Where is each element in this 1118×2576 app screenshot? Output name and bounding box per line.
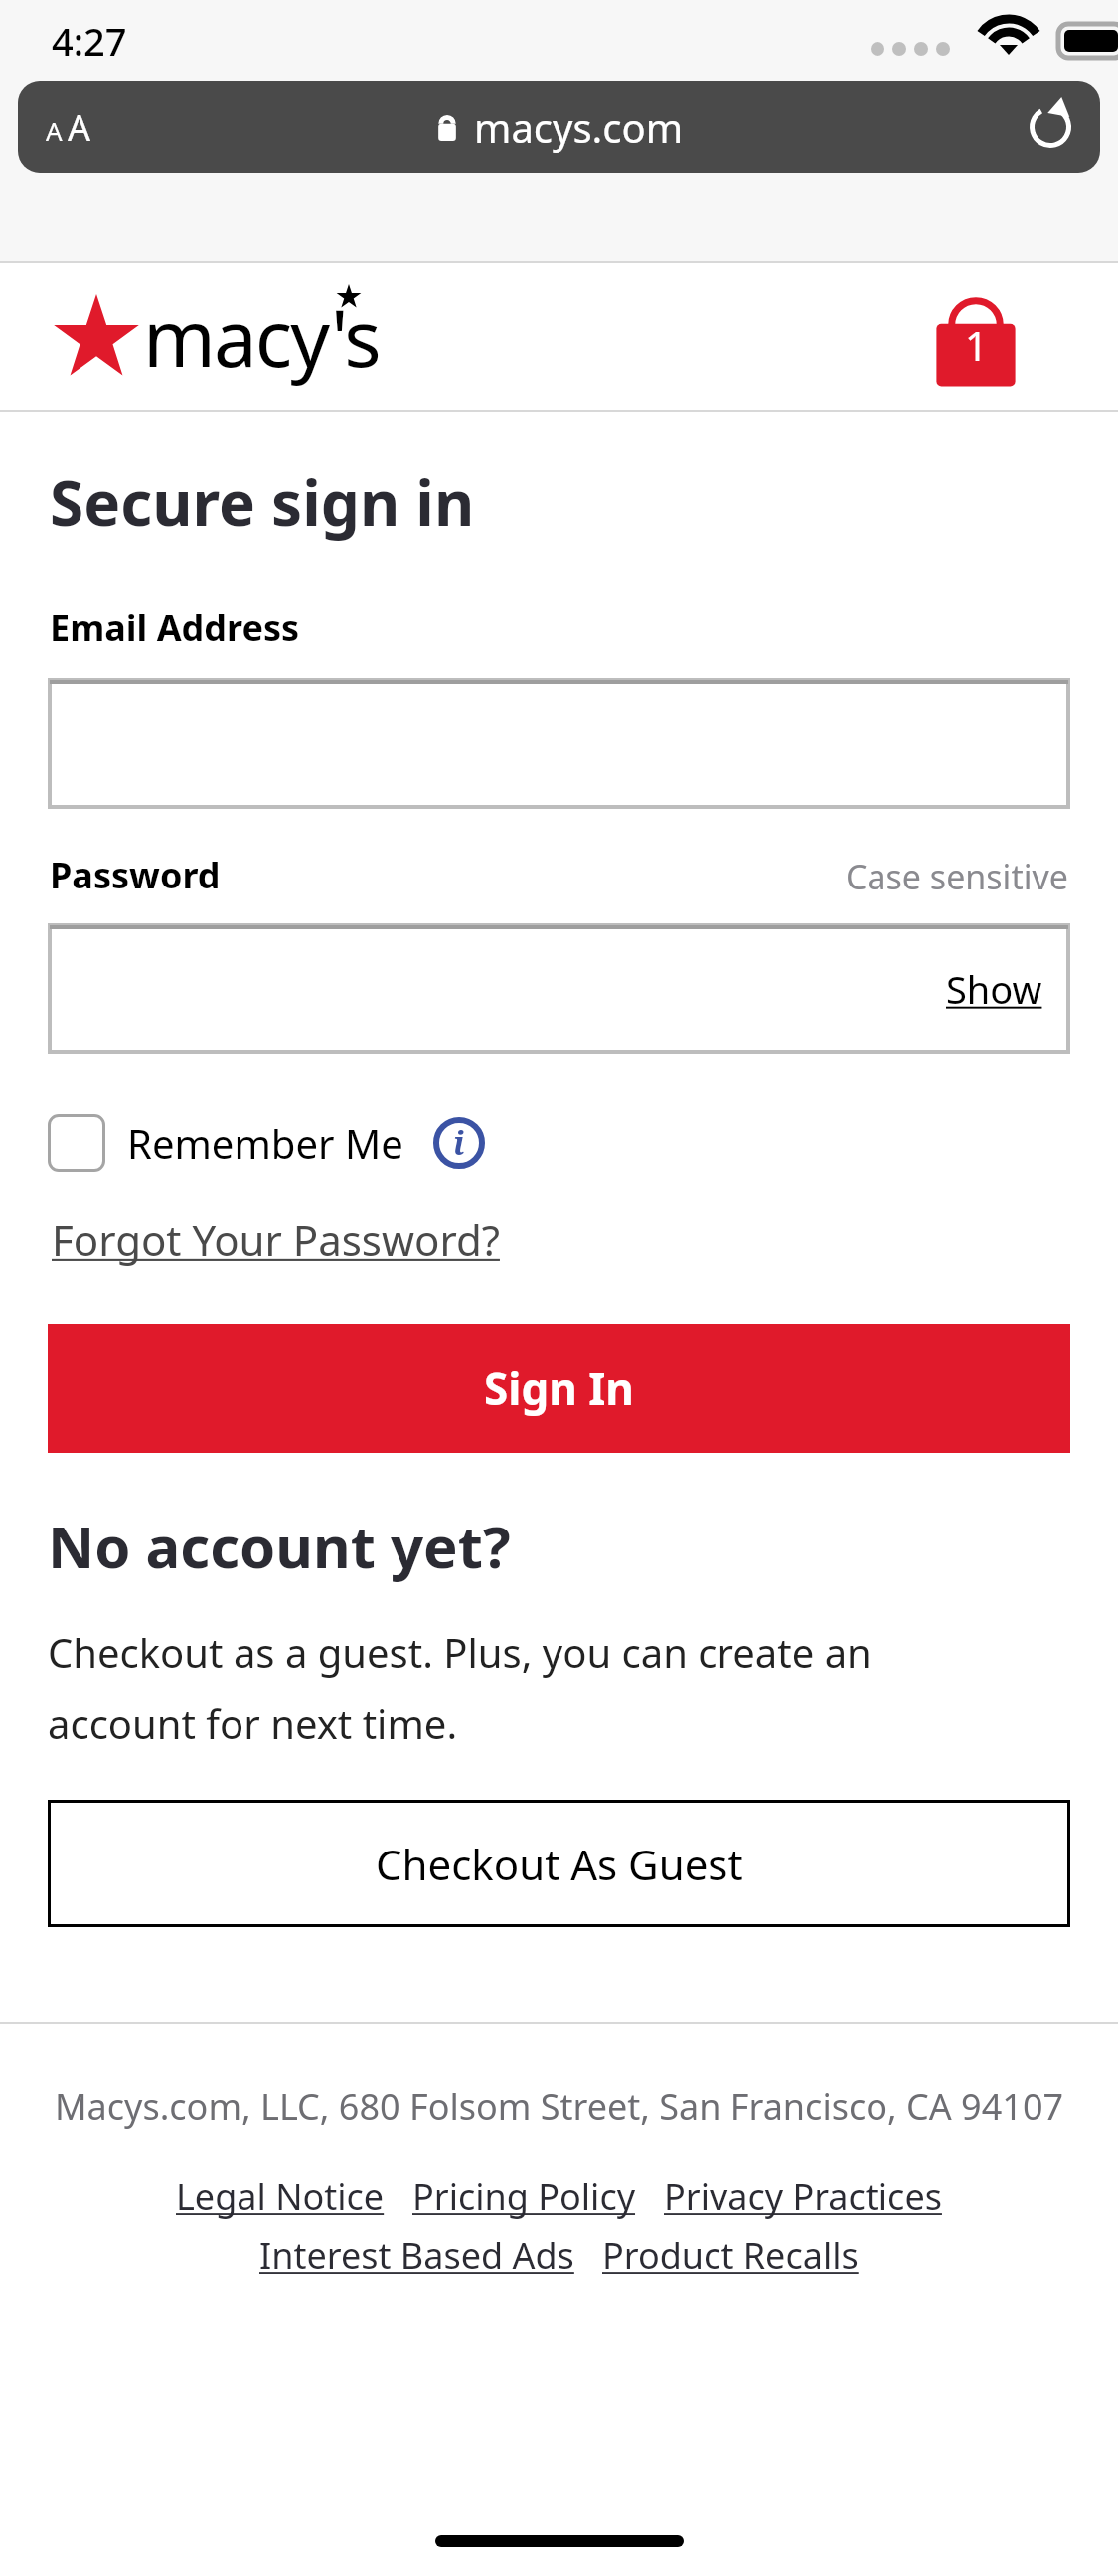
staticText: Forgot Your Password? <box>52 1211 500 1268</box>
staticText: Product Recalls <box>602 2231 859 2280</box>
staticText: Checkout As Guest <box>376 1836 743 1892</box>
button[interactable]: Forgot Your Password? <box>48 1207 504 1272</box>
button[interactable]: Show <box>942 959 1046 1019</box>
staticText: A <box>46 113 63 148</box>
button[interactable]: Interest Based Ads <box>259 2231 574 2280</box>
button[interactable]: Sign In <box>48 1324 1070 1453</box>
staticText: Password <box>50 851 221 899</box>
button[interactable]: Shopping bag, 1 item <box>931 282 1021 392</box>
button[interactable]: macy's <box>52 284 380 390</box>
staticText: Show <box>946 963 1042 1015</box>
staticText: 1 <box>965 318 988 372</box>
staticText: Privacy Practices <box>664 2173 942 2221</box>
staticText: Macys.com, LLC, 680 Folsom Street, San F… <box>24 2082 1094 2131</box>
staticText: Sign In <box>484 1359 634 1418</box>
staticText: Pricing Policy <box>412 2173 636 2221</box>
staticText: A <box>68 103 91 152</box>
staticText: Email Address <box>50 603 300 652</box>
staticText: No account yet? <box>48 1507 511 1585</box>
button[interactable]: Checkout As Guest <box>48 1800 1070 1927</box>
button[interactable]: A <box>18 81 1100 173</box>
button[interactable]: Remember Me <box>48 1114 403 1172</box>
staticText: Checkout as a guest. Plus, you can creat… <box>48 1625 872 1750</box>
button[interactable]: More information about Remember Me <box>433 1117 485 1169</box>
staticText: Legal Notice <box>176 2173 385 2221</box>
staticText: macys.com <box>474 100 684 154</box>
button[interactable]: Legal Notice <box>176 2173 385 2221</box>
button[interactable]: Privacy Practices <box>664 2173 942 2221</box>
staticText: i <box>453 1121 465 1165</box>
staticText: Secure sign in <box>50 460 475 544</box>
staticText: Case sensitive <box>846 854 1068 899</box>
button[interactable]: Product Recalls <box>602 2231 859 2280</box>
button[interactable]: Pricing Policy <box>412 2173 636 2221</box>
staticText: Remember Me <box>127 1116 403 1170</box>
button[interactable]: Show <box>50 925 1068 1052</box>
staticText: 4:27 <box>52 15 127 67</box>
staticText: macy's <box>143 284 380 390</box>
button[interactable]: Reload <box>1023 99 1078 155</box>
staticText: Interest Based Ads <box>259 2231 574 2280</box>
button[interactable] <box>50 680 1068 807</box>
